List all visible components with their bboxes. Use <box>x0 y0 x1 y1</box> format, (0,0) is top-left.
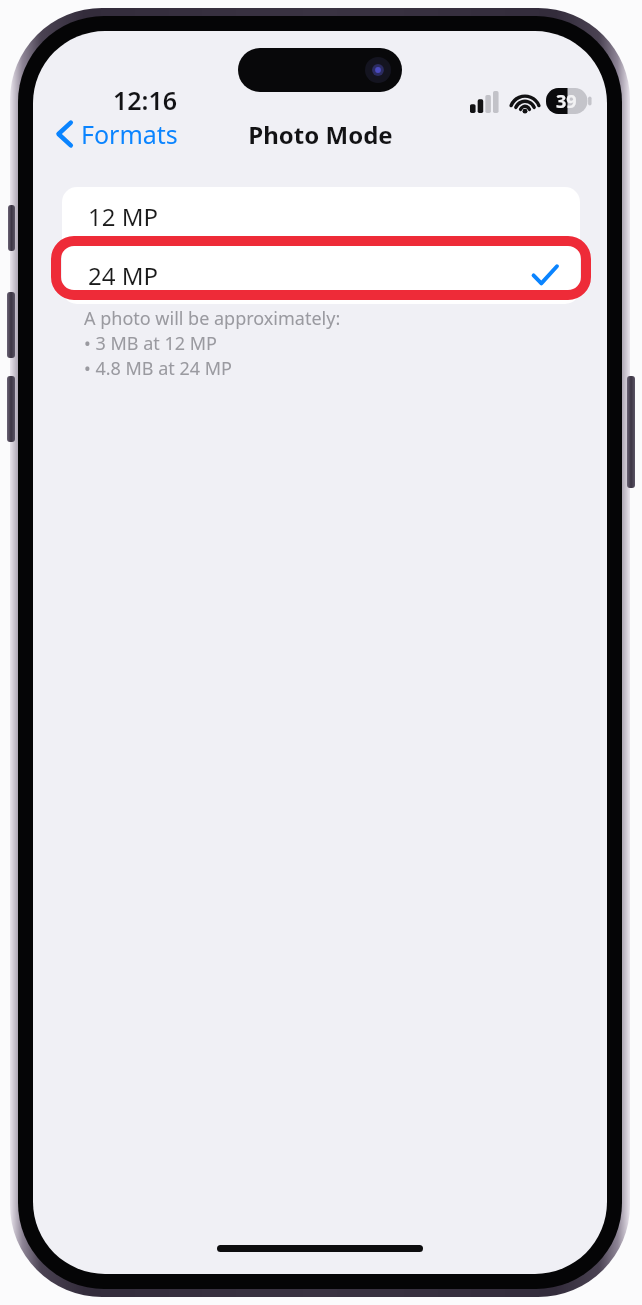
button[interactable]: Formats <box>47 110 188 158</box>
staticText: 12 MP <box>88 200 158 233</box>
button[interactable]: 24 MP <box>62 246 580 304</box>
staticText: 24 MP <box>88 259 158 292</box>
staticText: 39 <box>556 89 577 114</box>
other: Selected option highlight <box>51 236 591 300</box>
staticText: 12:16 <box>113 83 178 117</box>
staticText: Photo Mode <box>248 118 393 151</box>
button[interactable]: 12 MP <box>62 187 580 245</box>
staticText: Formats <box>81 117 178 151</box>
staticText: • 4.8 MB at 24 MP <box>84 356 233 381</box>
staticText: A photo will be approximately: <box>84 306 341 331</box>
staticText: • 3 MB at 12 MP <box>84 331 217 356</box>
